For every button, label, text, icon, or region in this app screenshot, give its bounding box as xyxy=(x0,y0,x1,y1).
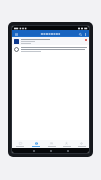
button[interactable]: Search xyxy=(77,31,83,37)
button[interactable]: Groups xyxy=(44,140,59,148)
button[interactable]: Settings xyxy=(74,140,89,148)
button[interactable]: Home xyxy=(48,148,53,153)
button[interactable]: Back xyxy=(31,148,36,153)
button[interactable]: Open navigation menu xyxy=(13,31,19,37)
button[interactable]: Inbox xyxy=(28,140,44,148)
button[interactable]: Contacts xyxy=(59,140,74,148)
button[interactable] xyxy=(12,37,89,45)
button[interactable]: Recent apps xyxy=(65,148,70,153)
button[interactable]: Chats xyxy=(12,140,28,148)
button[interactable]: More options xyxy=(83,31,88,37)
button[interactable] xyxy=(12,45,89,54)
